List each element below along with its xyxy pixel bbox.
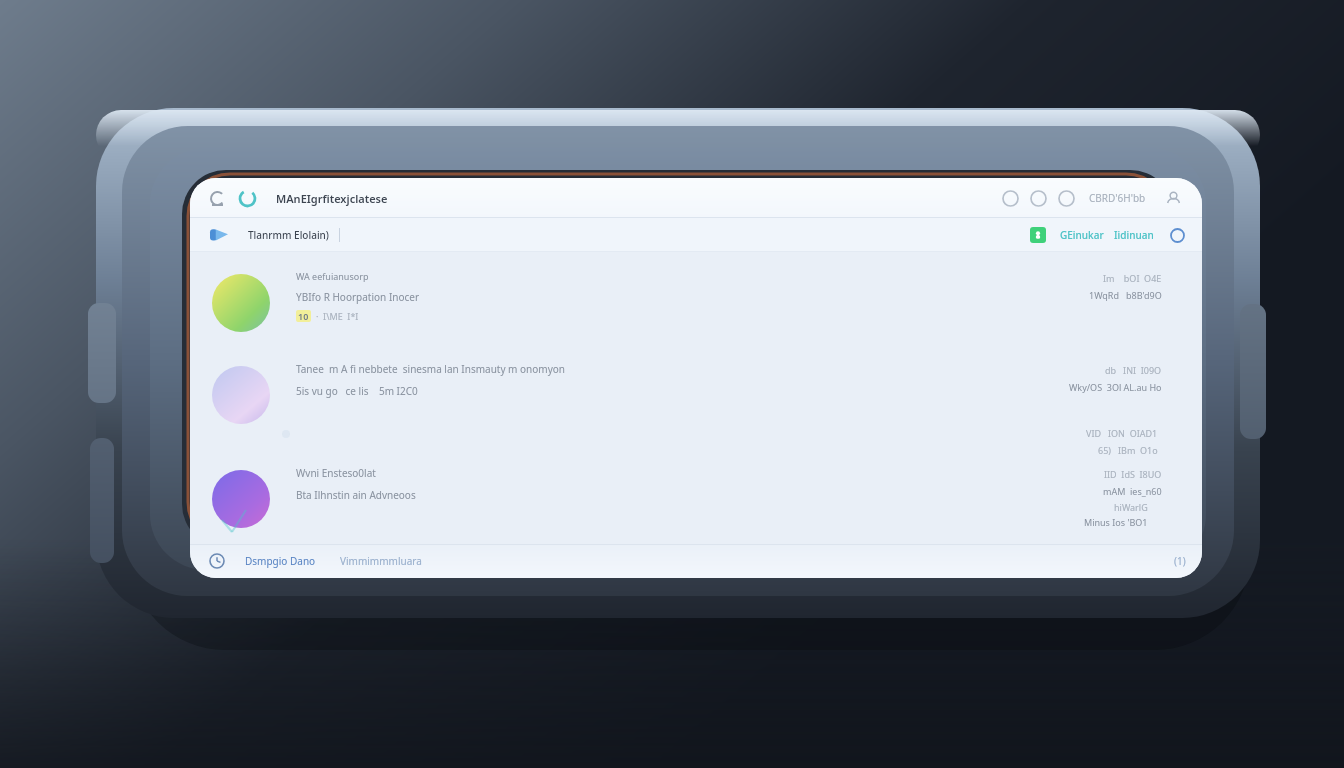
staticText: Im bOI O4E bbox=[1103, 272, 1162, 284]
button[interactable]: Refresh bbox=[236, 187, 258, 209]
staticText: Wky/OS 3Ol AL.au Ho bbox=[1069, 381, 1162, 393]
staticText: 1WqRd b8B'd9O bbox=[1089, 289, 1162, 301]
staticText: GEinukar bbox=[1060, 228, 1104, 242]
staticText: (1) bbox=[1174, 554, 1186, 568]
staticText: Tlanrmm Elolain) bbox=[248, 228, 329, 242]
staticText: IID IdS I8UO bbox=[1104, 468, 1162, 480]
staticText: Bta Ilhnstin ain Advneoos bbox=[296, 488, 416, 502]
button[interactable]: More bbox=[1168, 226, 1186, 244]
staticText: Dsmpgio Dano bbox=[245, 554, 316, 568]
button[interactable]: History bbox=[206, 550, 228, 572]
staticText: mAM ies_n60 bbox=[1103, 485, 1162, 497]
button[interactable]: Status bbox=[1030, 227, 1046, 243]
staticText: Iidinuan bbox=[1114, 228, 1154, 242]
staticText: Minus Ios 'BO1 bbox=[1084, 516, 1148, 528]
button[interactable]: Tanee m A fi nebbete sinesma lan Insmaut… bbox=[190, 358, 1202, 444]
button[interactable]: Dsmpgio Dano bbox=[242, 549, 319, 573]
staticText: Tanee m A fi nebbete sinesma lan Insmaut… bbox=[296, 362, 566, 376]
button[interactable]: Folder bbox=[206, 222, 232, 248]
staticText: YBIfo R Hoorpation Inocer bbox=[296, 290, 420, 304]
button[interactable]: Menu bbox=[206, 187, 228, 209]
button[interactable]: Account bbox=[1160, 185, 1186, 211]
button[interactable]: Vimmimmmluara bbox=[337, 549, 425, 573]
staticText: Vimmimmmluara bbox=[340, 554, 422, 568]
staticText: VID ION OIAD1 bbox=[1086, 427, 1158, 439]
staticText: 5is vu go ce lis 5m I2C0 bbox=[296, 384, 418, 398]
button[interactable]: Action 1 bbox=[997, 185, 1023, 211]
staticText: MAnEIgrfitexjclatese bbox=[276, 191, 388, 206]
staticText: db INI I09O bbox=[1105, 364, 1162, 376]
staticText: · I\ME I*I bbox=[316, 310, 359, 322]
button[interactable]: Action 3 bbox=[1053, 185, 1079, 211]
button[interactable]: Wvni Ensteso0lat bbox=[190, 462, 1202, 544]
staticText: WA eefuianusorp bbox=[296, 270, 369, 282]
staticText: hiWarlG bbox=[1114, 501, 1148, 513]
staticText: 10 bbox=[298, 310, 309, 322]
button[interactable]: Action 2 bbox=[1025, 185, 1051, 211]
button[interactable]: WA eefuianusorp bbox=[190, 252, 1202, 338]
staticText: Wvni Ensteso0lat bbox=[296, 466, 376, 480]
staticText: CBRD'6H'bb bbox=[1089, 191, 1146, 205]
staticText: 65) IBm O1o bbox=[1098, 444, 1158, 456]
